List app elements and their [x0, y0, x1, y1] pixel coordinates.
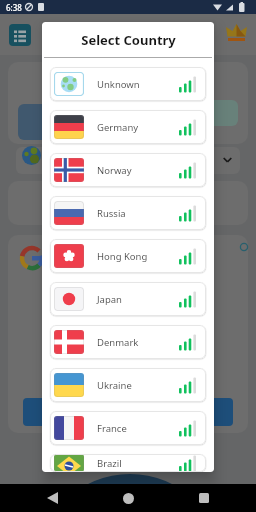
staticText: Denmark	[97, 336, 139, 349]
button[interactable]: Denmark	[50, 325, 206, 359]
staticText: Hong Kong	[97, 250, 148, 263]
button[interactable]	[14, 484, 90, 512]
button[interactable]: France	[50, 411, 206, 445]
staticText: France	[97, 422, 127, 435]
button[interactable]: Hong Kong	[50, 239, 206, 273]
button[interactable]: Norway	[50, 153, 206, 187]
button[interactable]: Germany	[50, 110, 206, 144]
button[interactable]: Unknown	[50, 67, 206, 101]
button[interactable]: Japan	[50, 282, 206, 316]
staticText: Russia	[97, 207, 126, 220]
button[interactable]	[90, 484, 166, 512]
staticText: Ukraine	[97, 379, 132, 392]
button[interactable]: Brazil	[50, 454, 206, 472]
button[interactable]	[9, 24, 31, 46]
button[interactable]: Russia	[50, 196, 206, 230]
staticText: Select Country	[81, 31, 176, 49]
staticText: Germany	[97, 121, 139, 134]
button[interactable]	[166, 484, 242, 512]
button[interactable]: Ukraine	[50, 368, 206, 402]
staticText: Japan	[97, 293, 122, 306]
button[interactable]	[16, 147, 240, 174]
staticText: 6:38	[6, 2, 22, 13]
staticText: Unknown	[97, 78, 140, 91]
staticText: Norway	[97, 164, 132, 177]
button[interactable]	[226, 24, 247, 41]
button[interactable]	[23, 398, 233, 426]
staticText: Brazil	[97, 457, 122, 470]
